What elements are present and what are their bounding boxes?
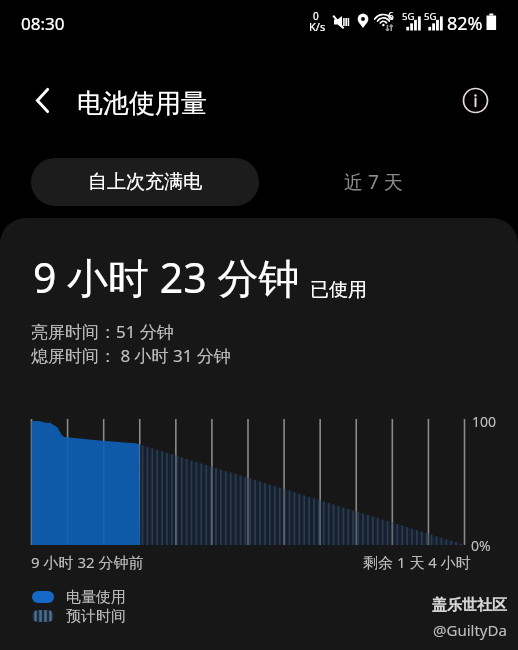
staticText: 电池使用量 (77, 87, 207, 120)
staticText: 熄屏时间： 8 小时 31 分钟 (31, 344, 231, 367)
staticText: 已使用 (310, 278, 367, 302)
staticText: 9 小时 32 分钟前 (31, 552, 144, 572)
staticText: K/s (309, 19, 326, 34)
staticText: 亮屏时间：51 分钟 (31, 320, 174, 343)
button[interactable]: Information (457, 82, 493, 118)
staticText: 电量使用 (66, 588, 126, 606)
staticText: 5G (402, 10, 415, 23)
button[interactable]: 自上次充满电 (31, 158, 259, 206)
staticText: 剩余 1 天 4 小时 (363, 552, 471, 572)
staticText: 近 7 天 (344, 169, 403, 195)
button[interactable]: 近 7 天 (293, 158, 453, 206)
staticText: 100 (472, 412, 497, 431)
staticText: 预计时间 (66, 607, 126, 625)
staticText: @GuiltyDa (433, 620, 507, 640)
staticText: 82% (447, 11, 483, 36)
staticText: 盖乐世社区 (432, 596, 507, 615)
button[interactable]: Back (22, 80, 62, 120)
staticText: 08:30 (21, 12, 65, 35)
staticText: 6 (388, 9, 394, 23)
button[interactable]: 预计时间 (32, 607, 126, 625)
staticText: 9 小时 23 分钟 (33, 249, 300, 305)
staticText: 5G (424, 10, 437, 23)
staticText: 自上次充满电 (88, 170, 202, 194)
staticText: 0 (313, 9, 319, 23)
staticText: 0% (471, 536, 491, 555)
button[interactable]: 电量使用 (32, 588, 126, 606)
